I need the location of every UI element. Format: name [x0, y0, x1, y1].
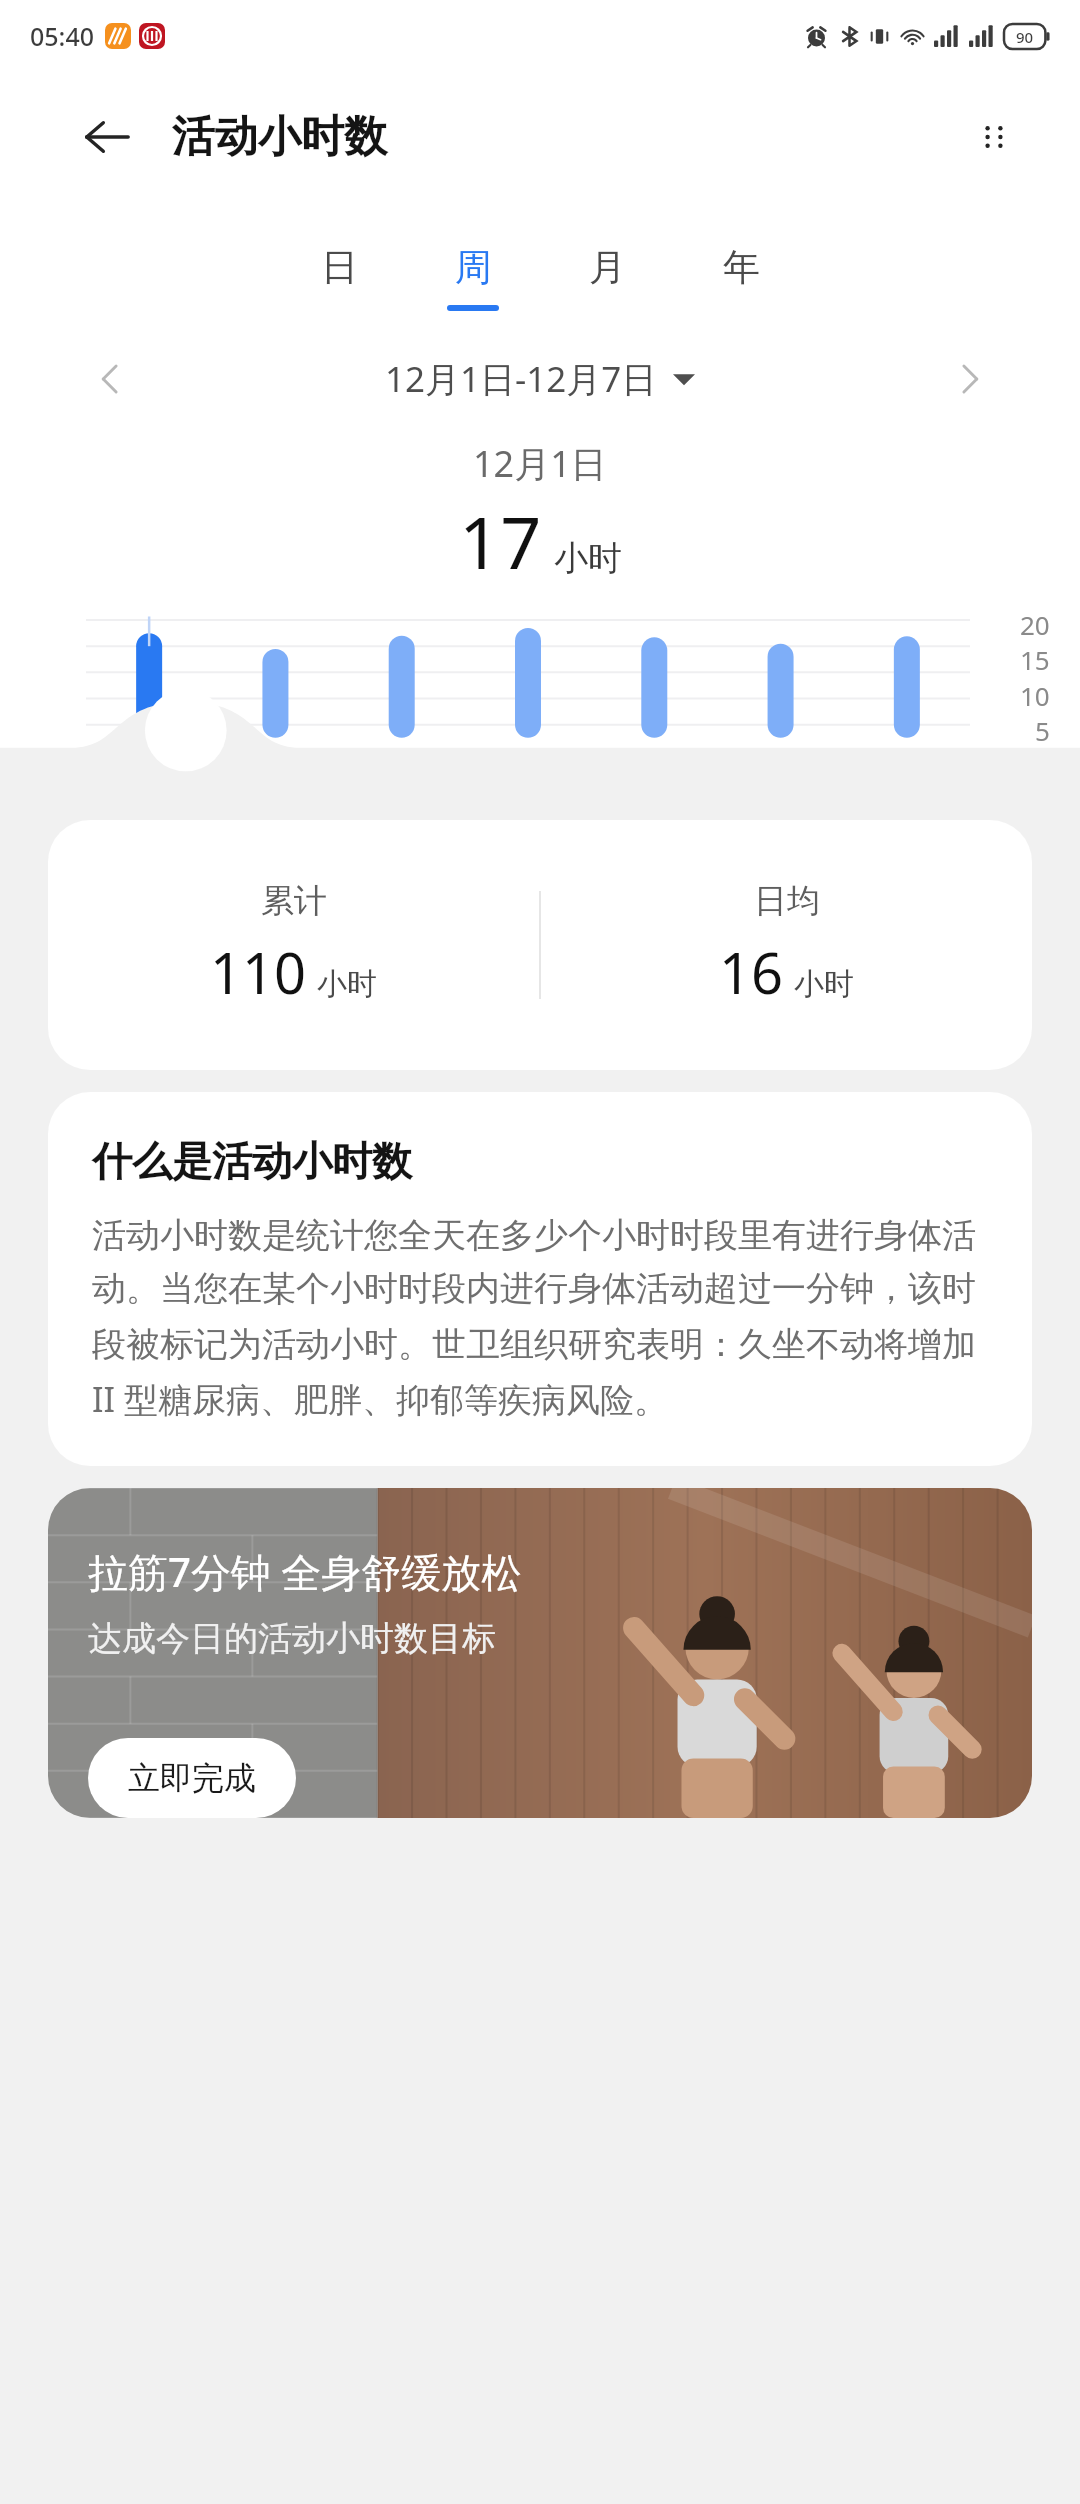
button[interactable]: 日 [272, 244, 406, 311]
staticText: 周六 [753, 924, 809, 959]
button[interactable]: 12月1日-12月7日 [146, 355, 934, 403]
button[interactable]: 立即完成 [88, 1738, 296, 1818]
staticText: 周四 [501, 924, 557, 959]
staticText: 90 [1016, 27, 1034, 47]
staticText: 周二 [249, 924, 305, 959]
staticText: 周 [455, 244, 492, 291]
staticText: 什么是活动小时数 [92, 1136, 412, 1186]
staticText: 110 [210, 934, 307, 1010]
staticText: 5 [1035, 713, 1050, 748]
staticText: 12月1日-12月7日 [385, 355, 657, 403]
staticText: 12月1日 [473, 439, 607, 488]
button[interactable]: 返回 [68, 98, 146, 176]
staticText: 累计 [261, 880, 327, 922]
staticText: 10 [1020, 678, 1050, 713]
staticText: 拉筋7分钟 全身舒缓放松 [88, 1544, 522, 1599]
button[interactable]: 拉筋7分钟 全身舒缓放松 [48, 1488, 1032, 1818]
staticText: 达成今日的活动小时数目标 [88, 1617, 496, 1660]
staticText: 立即完成 [128, 1758, 256, 1798]
staticText: 年 [723, 244, 760, 291]
staticText: 17 [459, 492, 542, 590]
staticText: 16 [719, 934, 784, 1010]
staticText: 20 [1020, 607, 1050, 642]
button[interactable]: 累计 [48, 820, 1032, 1070]
button[interactable]: 年 [674, 244, 808, 311]
button[interactable]: 周 [406, 244, 540, 311]
staticText: 日 [321, 244, 358, 291]
staticText: 15 [1020, 642, 1050, 677]
button[interactable]: 下一周 [934, 343, 1006, 415]
staticText: 小时 [317, 965, 377, 1003]
button[interactable]: 什么是活动小时数 [48, 1092, 1032, 1466]
button[interactable]: 月 [540, 244, 674, 311]
staticText: 05:40 [30, 19, 95, 53]
staticText: 月 [589, 244, 626, 291]
staticText: 小时 [794, 965, 854, 1003]
staticText: 活动小时数是统计您全天在多少个小时时段里有进行身体活动。当您在某个小时时段内进行… [92, 1214, 988, 1422]
staticText: 日均 [754, 880, 820, 922]
staticText: 活动小时数 [172, 110, 387, 164]
button[interactable]: 更多选项 [956, 99, 1032, 175]
button[interactable]: 上一周 [74, 343, 146, 415]
staticText: 小时 [554, 537, 622, 580]
